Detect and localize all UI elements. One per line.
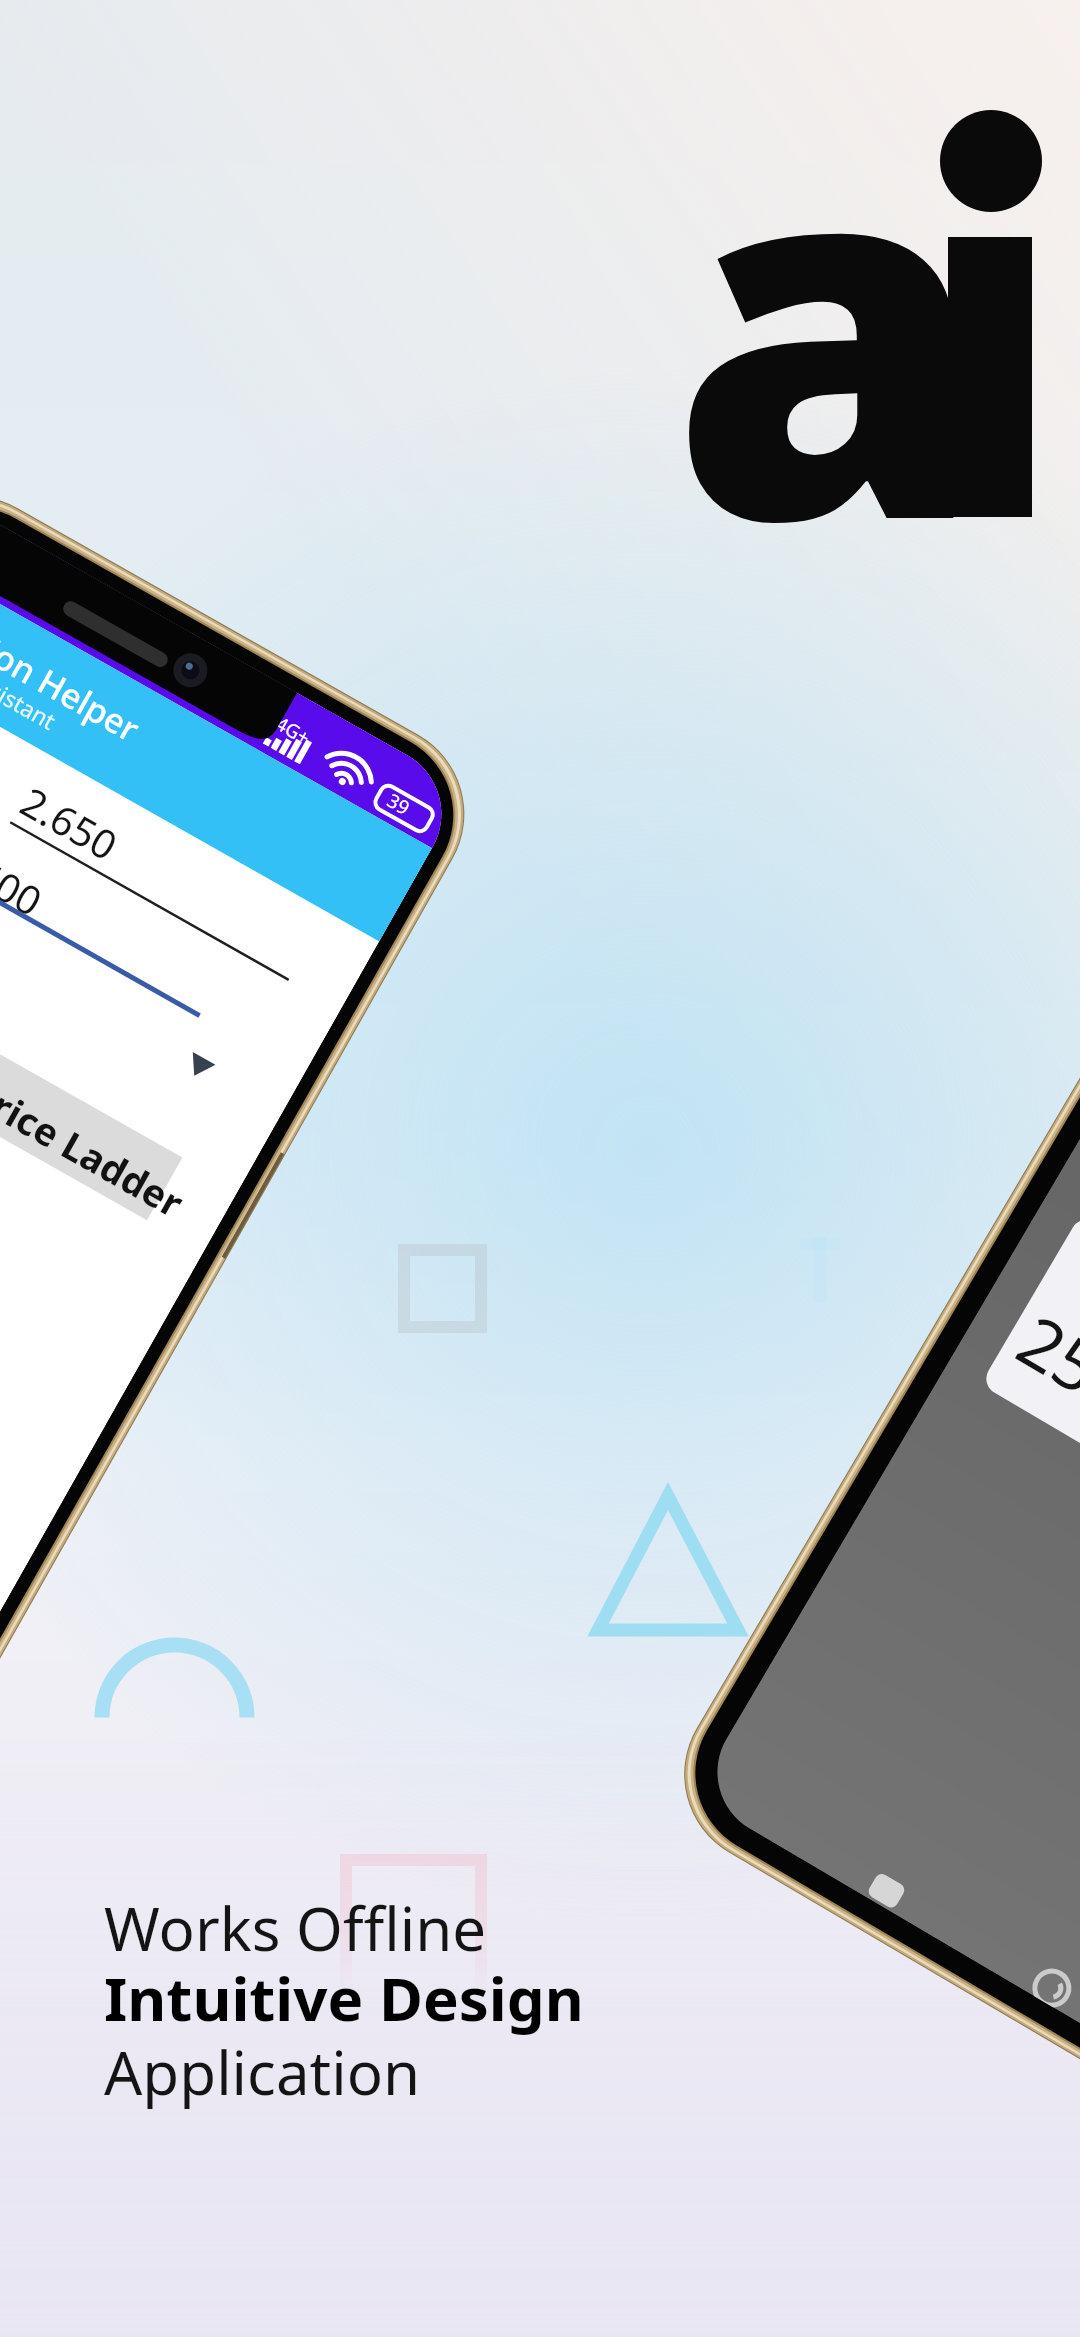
staticText: Works Offline [104, 1887, 487, 1969]
staticText: Intuitive Design [104, 1957, 584, 2039]
staticText: a [671, 0, 986, 666]
staticText: Application [104, 2031, 421, 2113]
